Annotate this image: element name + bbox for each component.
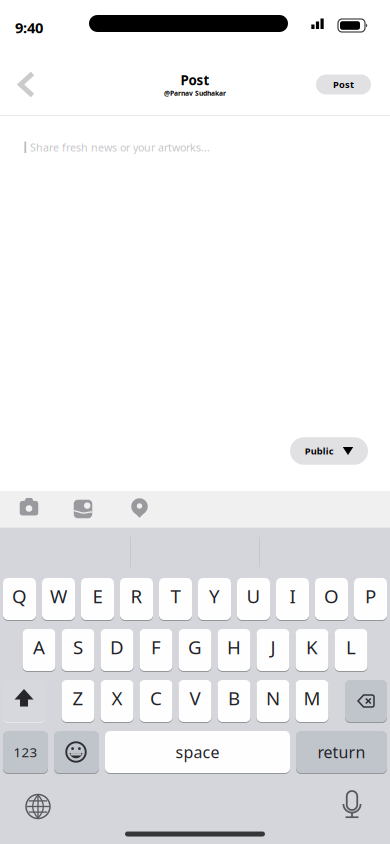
- button[interactable]: L: [334, 629, 367, 671]
- button[interactable]: V: [178, 680, 211, 722]
- button[interactable]: I: [276, 578, 309, 620]
- button[interactable]: S: [61, 629, 94, 671]
- staticText: @Parnav Sudhakar: [164, 89, 226, 98]
- staticText: Share fresh news or your artworks...: [30, 140, 210, 154]
- button[interactable]: 123: [3, 731, 48, 773]
- button[interactable]: Photo Library: [65, 491, 101, 527]
- staticText: Q: [12, 584, 27, 608]
- staticText: C: [150, 686, 162, 710]
- staticText: I: [289, 584, 295, 608]
- button[interactable]: Emoji: [54, 731, 99, 773]
- staticText: N: [266, 686, 280, 710]
- staticText: space: [175, 741, 219, 763]
- button[interactable]: C: [139, 680, 172, 722]
- button[interactable]: J: [256, 629, 289, 671]
- button[interactable]: E: [81, 578, 114, 620]
- button[interactable]: A: [22, 629, 55, 671]
- staticText: S: [73, 635, 83, 659]
- button[interactable]: G: [178, 629, 211, 671]
- button[interactable]: Back: [5, 71, 49, 98]
- staticText: F: [151, 635, 161, 659]
- staticText: Post: [333, 78, 354, 91]
- staticText: D: [110, 635, 124, 659]
- button[interactable]: U: [237, 578, 270, 620]
- staticText: H: [227, 635, 241, 659]
- button[interactable]: W: [42, 578, 75, 620]
- staticText: V: [189, 686, 200, 710]
- button[interactable]: Q: [3, 578, 36, 620]
- staticText: K: [306, 635, 318, 659]
- button[interactable]: M: [295, 680, 328, 722]
- staticText: U: [246, 584, 260, 608]
- staticText: L: [346, 635, 356, 659]
- staticText: J: [270, 635, 275, 659]
- button[interactable]: Audience: Public: [290, 437, 368, 465]
- button[interactable]: R: [120, 578, 153, 620]
- staticText: 123: [13, 743, 37, 761]
- button[interactable]: T: [159, 578, 192, 620]
- staticText: G: [188, 635, 202, 659]
- staticText: T: [170, 584, 180, 608]
- staticText: M: [303, 686, 320, 710]
- staticText: X: [111, 686, 122, 710]
- button[interactable]: Next keyboard: [24, 792, 52, 820]
- staticText: Z: [72, 686, 83, 710]
- button[interactable]: B: [217, 680, 250, 722]
- button[interactable]: space: [105, 731, 290, 773]
- staticText: A: [33, 635, 45, 659]
- button[interactable]: K: [295, 629, 328, 671]
- button[interactable]: N: [256, 680, 289, 722]
- staticText: R: [130, 584, 142, 608]
- button[interactable]: X: [100, 680, 133, 722]
- button[interactable]: Camera: [11, 491, 47, 527]
- staticText: E: [92, 584, 102, 608]
- button[interactable]: F: [139, 629, 172, 671]
- button[interactable]: H: [217, 629, 250, 671]
- button[interactable]: Post: [316, 74, 371, 94]
- staticText: return: [317, 741, 365, 763]
- button[interactable]: Shift: [3, 680, 45, 722]
- button[interactable]: O: [315, 578, 348, 620]
- staticText: 9:40: [15, 18, 43, 37]
- button[interactable]: P: [354, 578, 387, 620]
- staticText: Y: [209, 584, 220, 608]
- button[interactable]: Location: [121, 491, 157, 527]
- button[interactable]: Delete: [345, 680, 387, 722]
- staticText: O: [324, 584, 339, 608]
- staticText: P: [365, 584, 376, 608]
- button[interactable]: Y: [198, 578, 231, 620]
- staticText: Public: [305, 445, 334, 457]
- staticText: B: [228, 686, 240, 710]
- button[interactable]: Z: [61, 680, 94, 722]
- button[interactable]: return: [296, 731, 387, 773]
- staticText: W: [50, 584, 67, 608]
- button[interactable]: Dictate: [337, 789, 367, 821]
- staticText: Post: [180, 71, 209, 89]
- button[interactable]: D: [100, 629, 133, 671]
